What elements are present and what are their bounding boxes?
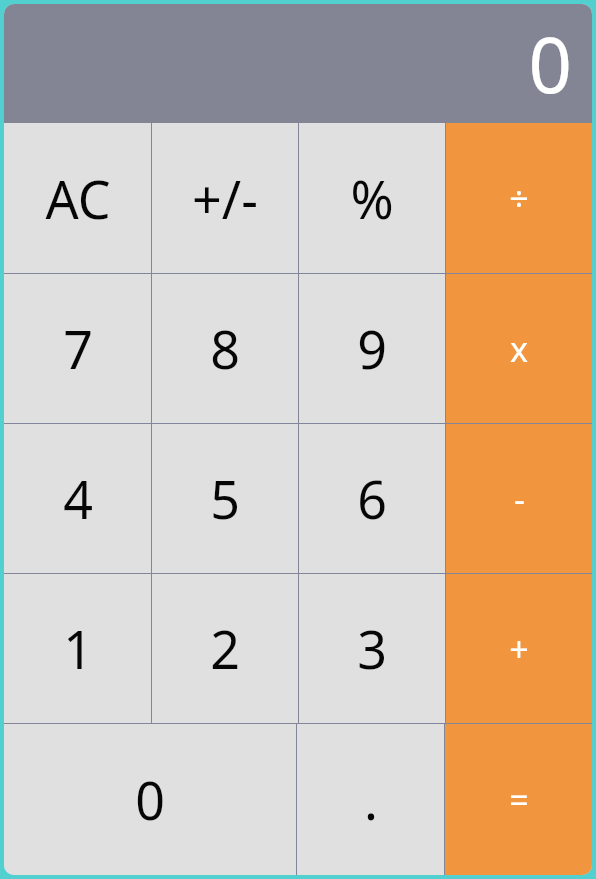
button[interactable]: Divide xyxy=(446,123,592,273)
button[interactable]: 7 xyxy=(4,274,151,423)
button[interactable]: % xyxy=(299,123,445,273)
staticText: 5 xyxy=(210,463,240,534)
button[interactable]: Equals xyxy=(445,724,592,875)
staticText: = xyxy=(509,777,529,823)
staticText: . xyxy=(364,764,378,835)
staticText: +/- xyxy=(192,163,258,234)
button[interactable]: Plus xyxy=(446,574,592,723)
staticText: 8 xyxy=(210,313,240,384)
staticText: ÷ xyxy=(509,175,529,221)
button[interactable]: +/- xyxy=(152,123,298,273)
button[interactable]: Minus xyxy=(446,424,592,573)
button[interactable]: 6 xyxy=(299,424,445,573)
button[interactable]: 0 xyxy=(4,724,296,875)
staticText: AC xyxy=(45,163,111,234)
staticText: 6 xyxy=(357,463,387,534)
button[interactable]: Multiply xyxy=(446,274,592,423)
staticText: 0 xyxy=(135,764,165,835)
staticText: % xyxy=(350,163,394,234)
button[interactable]: 3 xyxy=(299,574,445,723)
button[interactable]: . xyxy=(297,724,444,875)
staticText: 4 xyxy=(63,463,93,534)
staticText: 2 xyxy=(210,613,240,684)
button[interactable]: 2 xyxy=(152,574,298,723)
staticText: 3 xyxy=(357,613,387,684)
button[interactable]: 5 xyxy=(152,424,298,573)
button[interactable]: 8 xyxy=(152,274,298,423)
button[interactable]: AC xyxy=(4,123,151,273)
staticText: 1 xyxy=(63,613,93,684)
button[interactable]: 9 xyxy=(299,274,445,423)
staticText: 0 xyxy=(528,12,572,116)
staticText: 7 xyxy=(63,313,93,384)
staticText: - xyxy=(514,476,525,522)
staticText: + xyxy=(509,626,529,672)
button[interactable]: 4 xyxy=(4,424,151,573)
button[interactable]: 1 xyxy=(4,574,151,723)
staticText: x xyxy=(510,326,528,372)
staticText: 9 xyxy=(357,313,387,384)
